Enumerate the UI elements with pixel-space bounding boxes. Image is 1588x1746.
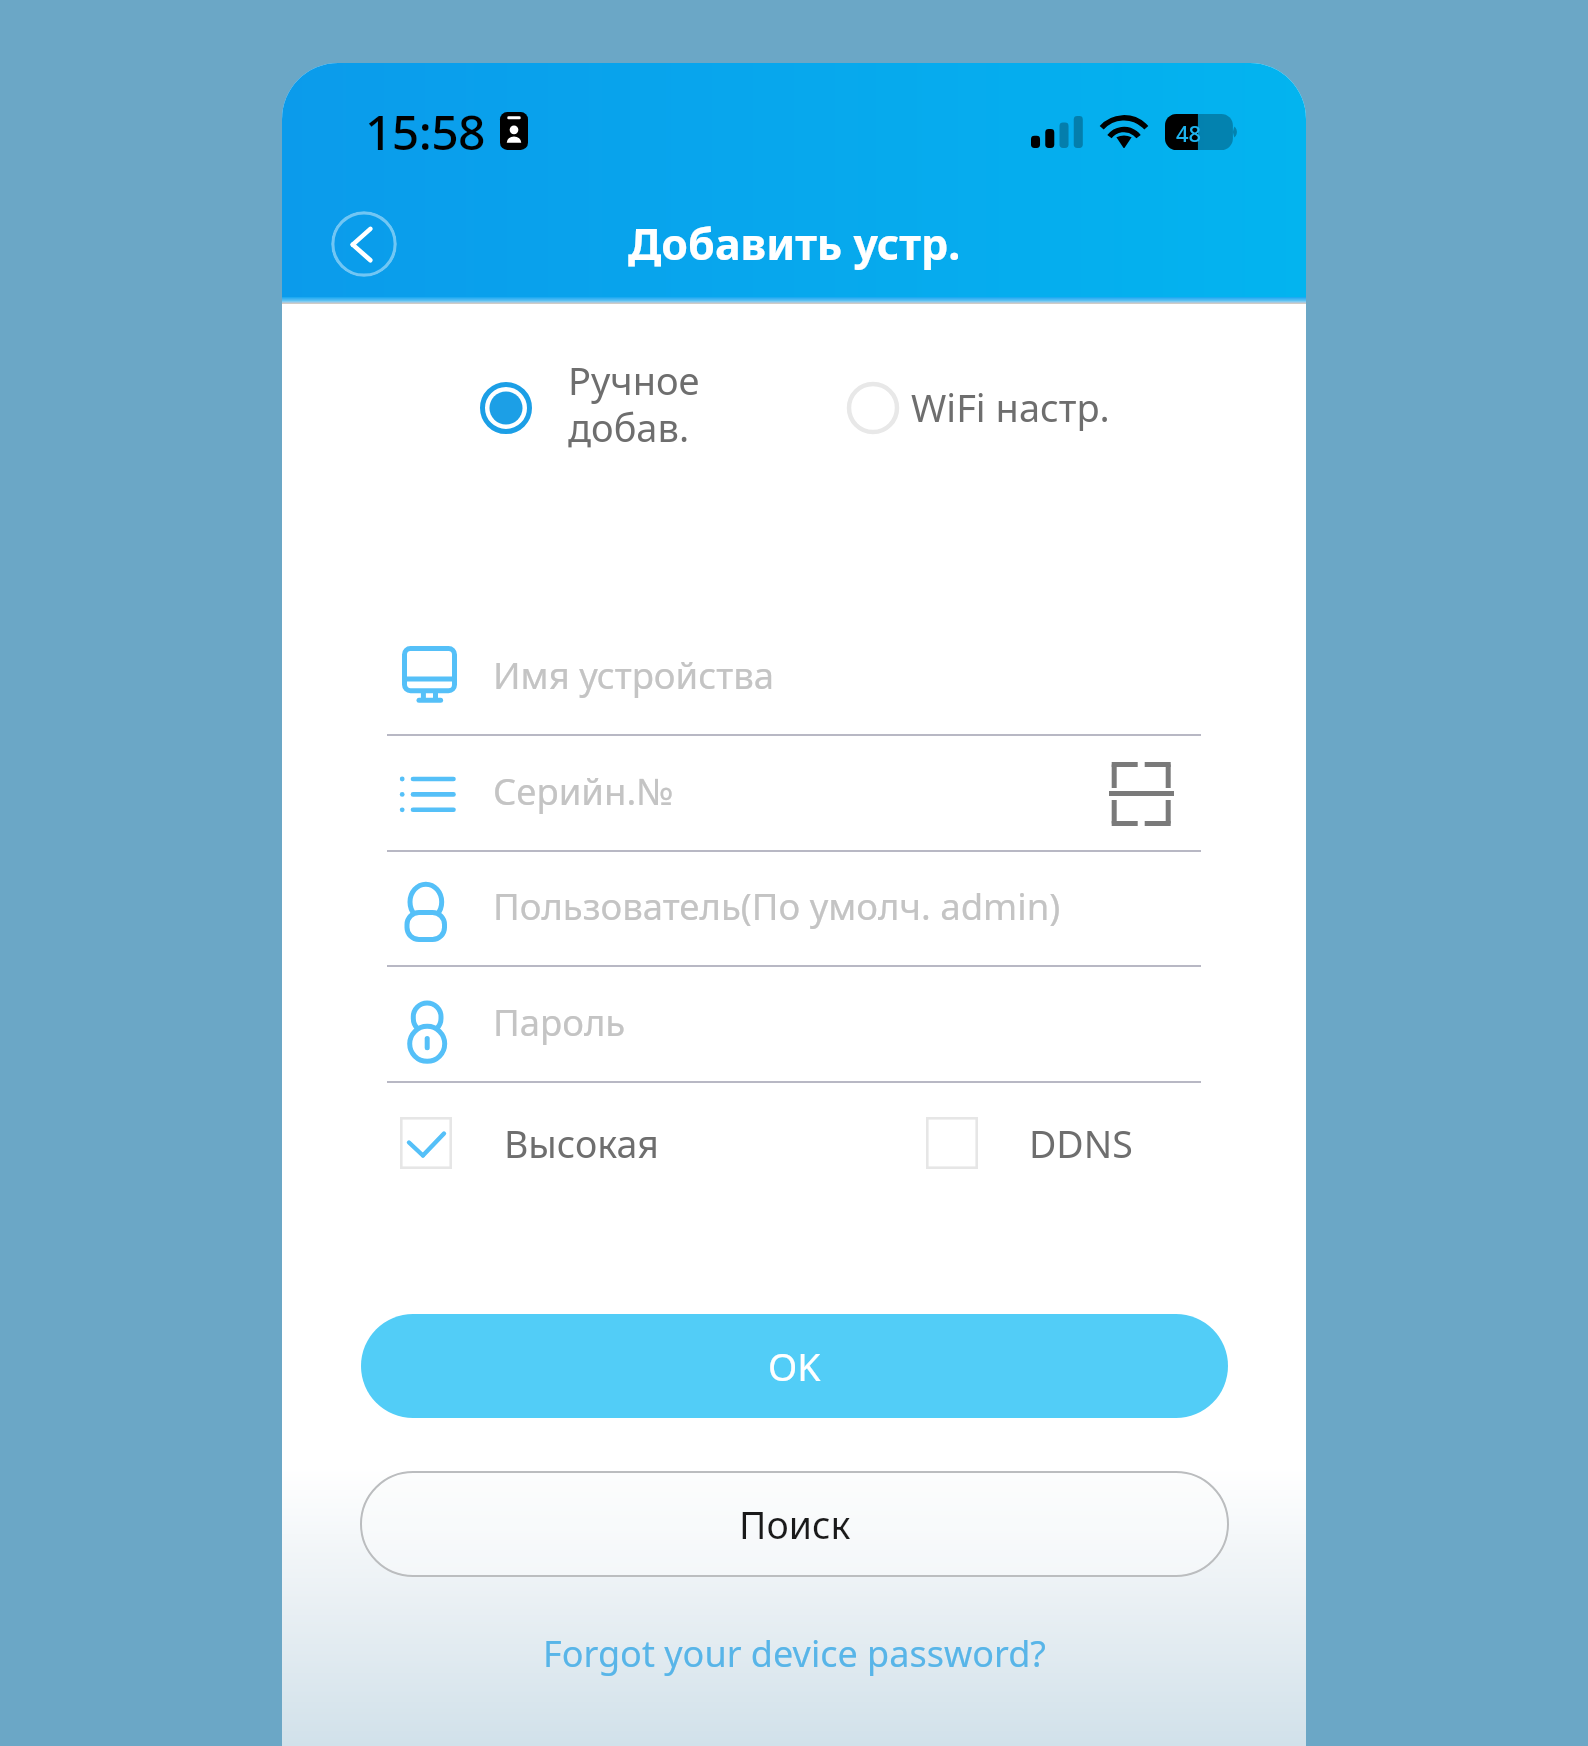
staticText: WiFi настр. — [911, 381, 1110, 433]
button[interactable]: DDNS — [914, 1105, 1254, 1187]
staticText: OK — [768, 1341, 821, 1392]
staticText: Имя устройства — [493, 650, 775, 700]
button[interactable] — [387, 620, 1201, 734]
button[interactable]: WiFi настр. — [833, 356, 1163, 460]
staticText: Серийн.№ — [493, 766, 674, 816]
staticText: Ручное добав. — [568, 354, 700, 453]
button[interactable]: OK — [361, 1314, 1228, 1418]
button[interactable] — [387, 967, 1201, 1081]
button[interactable]: Scan QR code — [1109, 762, 1175, 826]
button[interactable]: Back — [331, 211, 397, 277]
staticText: 48 — [1176, 118, 1202, 148]
button[interactable] — [387, 736, 1201, 850]
staticText: 15:58 — [365, 99, 485, 164]
staticText: Поиск — [739, 1499, 851, 1550]
button[interactable]: Высокая — [388, 1105, 728, 1187]
staticText: Пользователь(По умолч. admin) — [493, 881, 1061, 931]
staticText: Высокая — [504, 1118, 659, 1169]
staticText: Пароль — [493, 997, 626, 1047]
button[interactable] — [387, 851, 1201, 965]
staticText: DDNS — [1029, 1118, 1133, 1169]
button[interactable]: Ручное добав. — [466, 356, 766, 460]
button[interactable]: Forgot your device password? — [282, 1618, 1306, 1688]
staticText: Добавить устр. — [628, 214, 961, 273]
button[interactable]: Поиск — [361, 1472, 1228, 1576]
staticText: Forgot your device password? — [543, 1629, 1046, 1678]
